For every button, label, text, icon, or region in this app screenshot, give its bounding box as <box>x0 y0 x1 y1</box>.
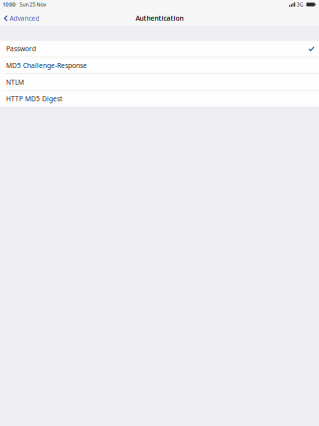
staticText: Password <box>6 44 36 53</box>
staticText: Authentication <box>135 14 183 23</box>
button[interactable]: Password <box>0 41 319 57</box>
staticText: HTTP MD5 Digest <box>6 94 62 103</box>
button[interactable]: NTLM <box>0 74 319 91</box>
staticText: MD5 Challenge-Response <box>6 61 87 70</box>
button[interactable]: Advanced <box>0 10 43 26</box>
button[interactable]: MD5 Challenge-Response <box>0 57 319 74</box>
staticText: NTLM <box>6 78 24 86</box>
staticText: 3G <box>297 1 304 8</box>
button[interactable]: HTTP MD5 Digest <box>0 91 319 107</box>
staticText: Advanced <box>9 14 39 23</box>
staticText: Sun 25 Nov <box>20 1 47 8</box>
staticText: 10:00 <box>3 1 16 8</box>
